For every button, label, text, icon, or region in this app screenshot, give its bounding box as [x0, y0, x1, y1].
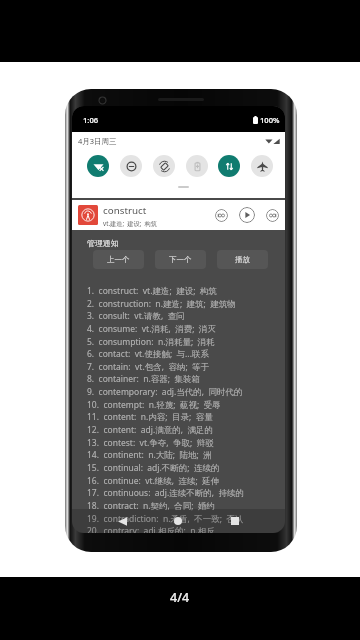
staticText: 4/4	[170, 589, 190, 606]
button[interactable]: 下一个	[155, 250, 206, 269]
staticText: 13. contest: vt.争夺, 争取; 辩驳	[87, 437, 214, 449]
button[interactable]: Mobile data	[218, 155, 240, 177]
staticText: 7. contain: vt.包含, 容纳; 等于	[87, 361, 210, 373]
button[interactable]: Battery saver	[186, 155, 208, 177]
staticText: vt.建造; 建设; 构筑	[103, 219, 157, 227]
staticText: 17. continuous: adj.连续不断的, 持续的	[87, 487, 244, 499]
button[interactable]: Home	[168, 511, 188, 531]
staticText: 8. container: n.容器; 集装箱	[87, 373, 201, 385]
button[interactable]: Play	[239, 207, 255, 223]
staticText: 100%	[260, 115, 280, 125]
staticText: 19. contradiction: n.矛盾, 不一致; 否认	[87, 513, 244, 525]
staticText: 18. contract: n.契约, 合同; 婚约	[87, 500, 215, 512]
button[interactable]: Previous	[215, 209, 228, 222]
button[interactable]: Back	[112, 511, 132, 531]
button[interactable]: 上一个	[93, 250, 144, 269]
button[interactable]: Wi-Fi off	[87, 155, 109, 177]
button[interactable]: Recents	[225, 511, 245, 531]
staticText: 16. continue: vt.继续, 连续; 延伸	[87, 475, 220, 487]
staticText: 10. contempt: n.轻蔑; 藐视; 受辱	[87, 399, 221, 411]
staticText: 1. construct: vt.建造; 建设; 构筑	[87, 285, 217, 297]
staticText: 15. continual: adj.不断的; 连续的	[87, 462, 220, 474]
staticText: 管理通知	[87, 238, 119, 248]
button[interactable]: Auto rotate	[153, 155, 175, 177]
staticText: 6. contact: vt.使接触; 与...联系	[87, 348, 209, 360]
staticText: 20. contrary: adj.相反的; n.相反	[87, 525, 215, 533]
staticText: 12. content: adj.满意的, 满足的	[87, 424, 213, 436]
staticText: construct	[103, 204, 147, 217]
button[interactable]: Airplane mode	[251, 155, 273, 177]
staticText: 播放	[235, 255, 250, 264]
staticText: 1:06	[83, 115, 99, 125]
button[interactable]: Next	[266, 209, 279, 222]
staticText: 4. consume: vt.消耗, 消费; 消灭	[87, 323, 216, 335]
staticText: 4月3日周三	[78, 136, 117, 146]
staticText: 5. consumption: n.消耗量; 消耗	[87, 336, 215, 348]
staticText: 11. content: n.内容; 目录; 容量	[87, 411, 213, 423]
staticText: 2. construction: n.建造; 建筑; 建筑物	[87, 298, 236, 310]
button[interactable]: 播放	[217, 250, 268, 269]
staticText: 9. contemporary: adj.当代的, 同时代的	[87, 386, 243, 398]
button[interactable]: construct	[72, 200, 285, 230]
staticText: 上一个	[107, 255, 130, 264]
staticText: 下一个	[169, 255, 192, 264]
button[interactable]: Do not disturb	[120, 155, 142, 177]
staticText: 14. continent: n.大陆; 陆地; 洲	[87, 449, 212, 461]
staticText: 3. consult: vt.请教, 查问	[87, 310, 185, 322]
